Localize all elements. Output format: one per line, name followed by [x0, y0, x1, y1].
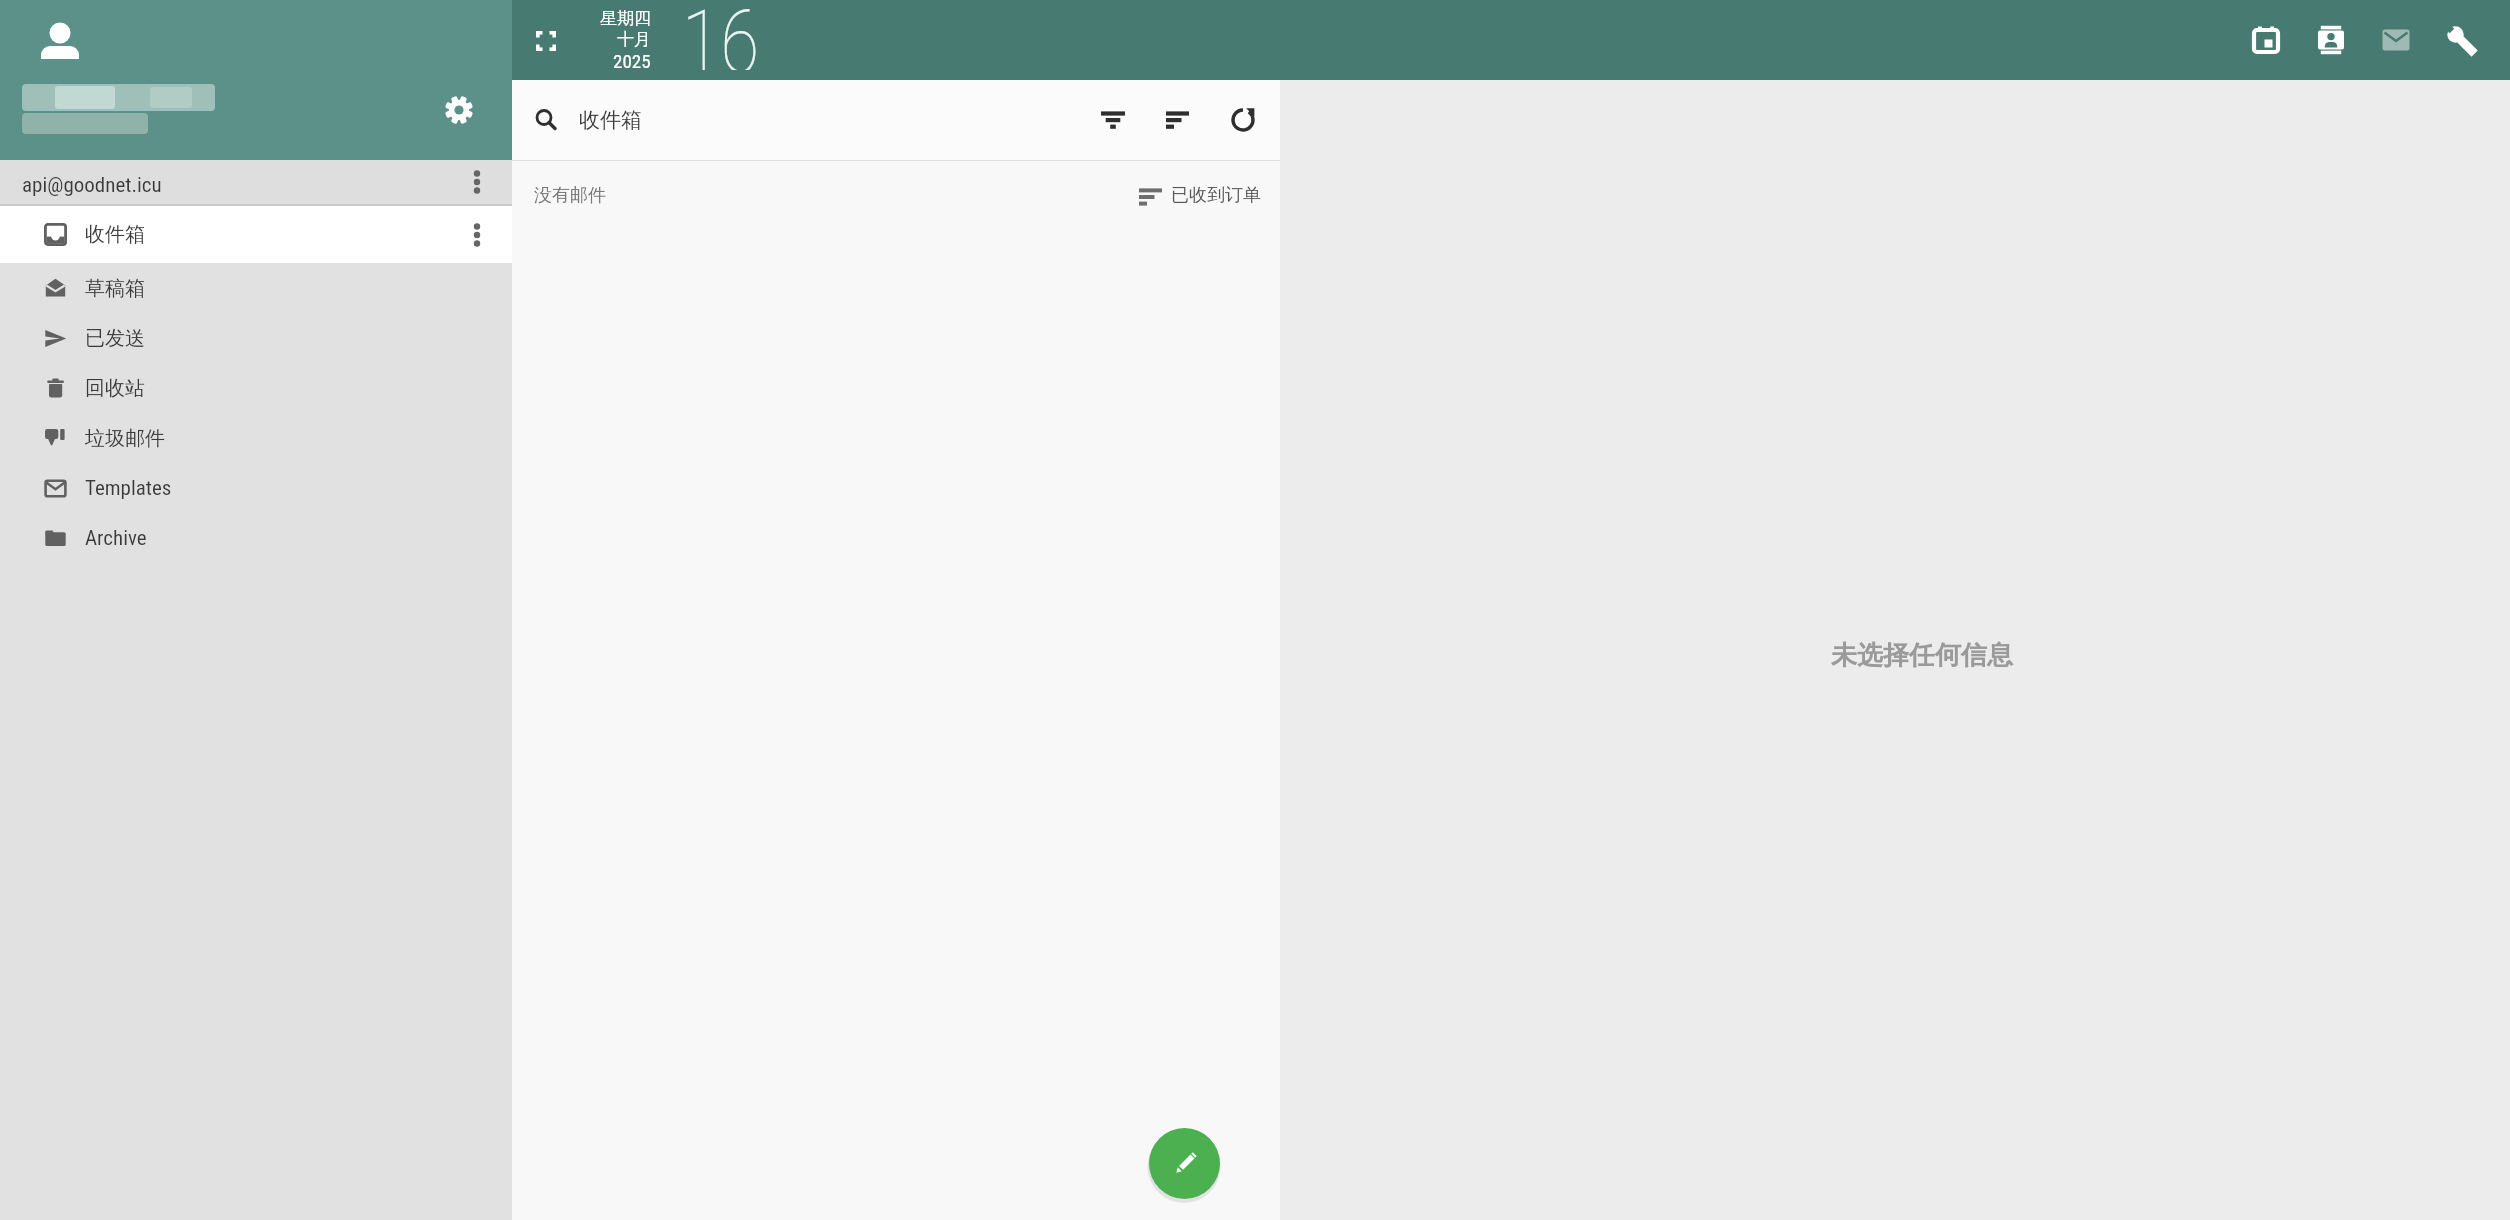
button[interactable]: 收件箱 [0, 206, 512, 263]
button[interactable]: api@goodnet.icu [0, 160, 512, 204]
staticText: Archive [85, 526, 147, 551]
button[interactable] [437, 88, 481, 132]
staticText: 回收站 [85, 376, 145, 401]
button[interactable]: 垃圾邮件 [0, 413, 512, 463]
button[interactable] [526, 21, 566, 61]
button[interactable] [1149, 1128, 1220, 1199]
staticText: Templates [85, 476, 172, 501]
staticText: 草稿箱 [85, 276, 145, 301]
button[interactable]: 回收站 [0, 363, 512, 413]
button[interactable] [1158, 100, 1198, 140]
staticText: 十月 [617, 29, 651, 50]
button[interactable]: 已收到订单 [1139, 184, 1261, 207]
staticText: 收件箱 [85, 222, 145, 247]
staticText: 垃圾邮件 [85, 426, 165, 451]
button[interactable]: 收件箱 [512, 80, 1280, 160]
button[interactable] [2376, 20, 2416, 60]
staticText: 16 [682, 0, 760, 70]
staticText: 星期四 [600, 8, 651, 29]
staticText: 已发送 [85, 326, 145, 351]
staticText: 未选择任何信息 [1831, 639, 2013, 672]
button[interactable]: 草稿箱 [0, 263, 512, 313]
staticText: 2025 [613, 50, 651, 72]
staticText: 已收到订单 [1171, 184, 1261, 207]
staticText: 没有邮件 [534, 184, 606, 207]
button[interactable]: Templates [0, 463, 512, 513]
staticText: 收件箱 [579, 107, 642, 133]
button[interactable] [1223, 100, 1263, 140]
button[interactable] [2311, 20, 2351, 60]
button[interactable]: 已发送 [0, 313, 512, 363]
staticText: api@goodnet.icu [22, 173, 162, 198]
button[interactable] [2246, 20, 2286, 60]
button[interactable] [1093, 100, 1133, 140]
button[interactable] [2441, 20, 2481, 60]
button[interactable]: Archive [0, 513, 512, 563]
